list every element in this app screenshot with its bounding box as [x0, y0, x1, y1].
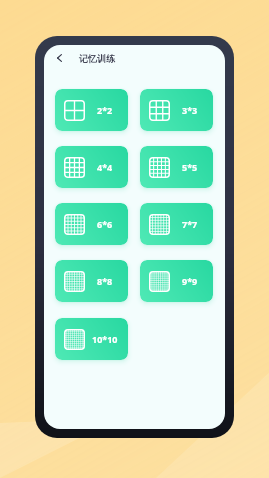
button[interactable]: 5*5 [140, 146, 213, 188]
staticText: 6*6 [97, 218, 113, 230]
staticText: 10*10 [92, 333, 118, 345]
staticText: 9*9 [182, 275, 198, 287]
button[interactable]: 3*3 [140, 89, 213, 131]
staticText: 7*7 [182, 218, 198, 230]
staticText: 3*3 [182, 104, 198, 116]
button[interactable]: 7*7 [140, 203, 213, 245]
button[interactable]: 6*6 [55, 203, 128, 245]
button[interactable]: 4*4 [55, 146, 128, 188]
button[interactable]: Back [51, 50, 67, 66]
staticText: 5*5 [182, 161, 198, 173]
staticText: 4*4 [97, 161, 113, 173]
button[interactable]: 8*8 [55, 260, 128, 302]
button[interactable]: 10*10 [55, 318, 128, 360]
staticText: 8*8 [97, 275, 113, 287]
button[interactable]: 2*2 [55, 89, 128, 131]
staticText: 记忆训练 [79, 53, 115, 64]
staticText: 2*2 [97, 104, 113, 116]
button[interactable]: 9*9 [140, 260, 213, 302]
